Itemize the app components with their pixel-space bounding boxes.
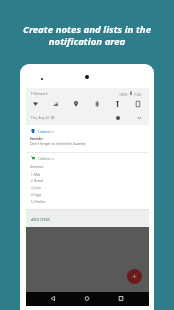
button[interactable]: Expand quick settings <box>135 114 143 122</box>
staticText: Don't forget to check the laundry <box>30 141 86 146</box>
staticText: 4. Eggs <box>31 193 42 197</box>
staticText: 7:08 <box>134 92 141 96</box>
staticText: Collateral <box>38 157 50 161</box>
staticText: 1. Milk <box>31 173 41 177</box>
staticText: 100% <box>119 92 128 96</box>
button[interactable]: Home <box>82 292 92 305</box>
button[interactable]: Add note <box>127 269 142 284</box>
staticText: Create notes and lists in the <box>0 23 174 36</box>
button[interactable]: Back <box>48 292 58 305</box>
staticText: ADD ITEM <box>31 217 50 222</box>
staticText: 5. Chicken <box>31 200 46 204</box>
staticText: Collateral <box>38 130 50 134</box>
staticText: Groceries <box>30 165 44 169</box>
button[interactable]: Account <box>116 116 120 120</box>
staticText: Fi Network <box>31 92 48 96</box>
staticText: 2. Bread <box>31 179 43 183</box>
staticText: Reminder <box>30 137 43 141</box>
staticText: Thu, Aug 24 <box>31 116 49 120</box>
button[interactable]: ADD ITEM <box>26 210 149 227</box>
button[interactable] <box>26 153 149 209</box>
staticText: notification area <box>0 35 174 48</box>
button[interactable] <box>26 125 149 152</box>
staticText: 3. Juice <box>31 186 41 190</box>
button[interactable]: Recent apps <box>116 292 126 305</box>
